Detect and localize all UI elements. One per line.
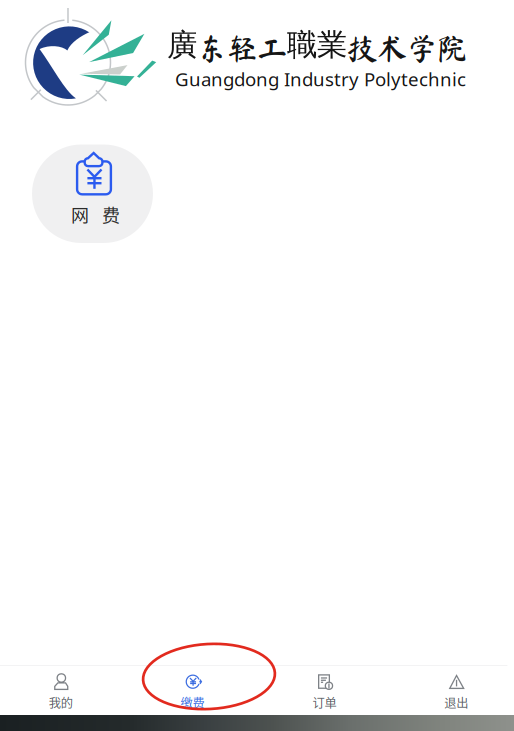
staticText: 费 — [102, 201, 120, 227]
staticText: 网 — [71, 201, 89, 227]
staticText: 缴费 — [181, 694, 205, 711]
button[interactable]: 缴费 — [127, 665, 258, 714]
staticText: 廣东轻工職業技术学院 — [167, 26, 467, 64]
button[interactable]: 退出 — [390, 665, 514, 714]
staticText: 退出 — [444, 694, 468, 711]
button[interactable]: 订单 — [258, 665, 390, 714]
staticText: 我的 — [49, 694, 73, 711]
button[interactable]: 网 — [32, 144, 153, 243]
staticText: 订单 — [312, 694, 336, 711]
button[interactable]: 我的 — [0, 665, 127, 714]
staticText: Guangdong Industry Polytechnic — [175, 67, 466, 91]
